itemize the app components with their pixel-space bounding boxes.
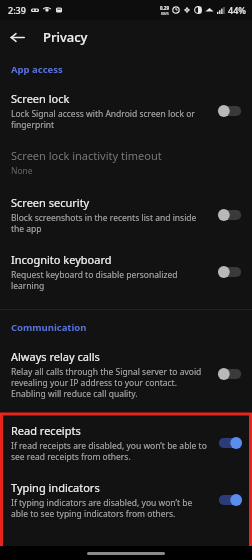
staticText: Read receipts bbox=[11, 423, 81, 438]
staticText: Incognito keyboard bbox=[11, 252, 112, 267]
staticText: If read receipts are disabled, you won’t… bbox=[11, 440, 210, 462]
staticText: Typing indicators bbox=[11, 480, 100, 495]
button[interactable]: Toggle off bbox=[216, 264, 244, 280]
staticText: Lock Signal access with Android screen l… bbox=[11, 108, 210, 130]
staticText: Screen security bbox=[11, 195, 90, 210]
staticText: Screen lock bbox=[11, 91, 70, 106]
button[interactable]: Screen lock inactivity timeout bbox=[0, 139, 252, 186]
staticText: Communication bbox=[11, 321, 87, 334]
staticText: 2:39 bbox=[8, 4, 26, 16]
staticText: Relay all calls through the Signal serve… bbox=[11, 366, 210, 399]
button[interactable]: Toggle on bbox=[216, 435, 244, 451]
button[interactable]: Toggle off bbox=[216, 207, 244, 223]
staticText: 0.29 bbox=[160, 5, 169, 11]
button[interactable]: Screen security bbox=[0, 186, 252, 243]
button[interactable]: Communication bbox=[0, 310, 252, 340]
button[interactable]: Back bbox=[0, 20, 34, 54]
staticText: Always relay calls bbox=[11, 349, 100, 364]
staticText: None bbox=[11, 165, 33, 177]
button[interactable]: App access bbox=[0, 54, 252, 82]
staticText: Request keyboard to disable personalized… bbox=[11, 269, 210, 291]
staticText: If typing indicators are disabled, you w… bbox=[11, 497, 210, 519]
button[interactable]: Toggle off bbox=[216, 103, 244, 119]
button[interactable]: Screen lock bbox=[0, 82, 252, 139]
button[interactable]: Incognito keyboard bbox=[0, 243, 252, 300]
staticText: 44% bbox=[228, 4, 246, 16]
staticText: Screen lock inactivity timeout bbox=[11, 148, 162, 163]
button[interactable]: Typing indicators bbox=[0, 471, 252, 528]
staticText: KB/S bbox=[161, 11, 169, 16]
staticText: Privacy bbox=[43, 28, 88, 46]
staticText: App access bbox=[11, 63, 63, 76]
button[interactable]: Always relay calls bbox=[0, 340, 252, 408]
staticText: Block screenshots in the recents list an… bbox=[11, 212, 210, 234]
button[interactable]: Read receipts bbox=[0, 414, 252, 471]
button[interactable]: Toggle off bbox=[216, 366, 244, 382]
button[interactable]: Toggle on bbox=[216, 492, 244, 508]
